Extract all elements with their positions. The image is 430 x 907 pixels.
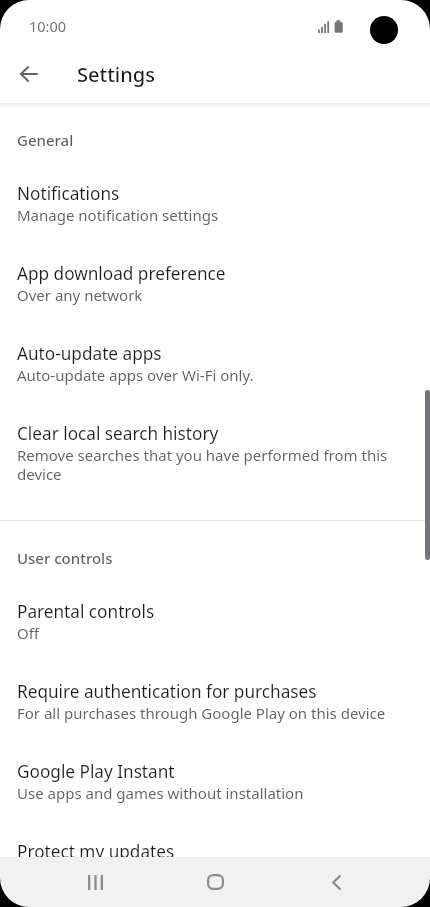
- button[interactable]: Google Play Instant: [0, 743, 430, 820]
- staticText: 10:00: [29, 16, 67, 36]
- button[interactable]: Home: [187, 860, 243, 904]
- staticText: Require authentication for purchases: [17, 680, 317, 703]
- staticText: Auto-update apps over Wi-Fi only.: [17, 365, 254, 385]
- staticText: Protect my updates: [17, 840, 175, 863]
- staticText: Manage notification settings: [17, 205, 219, 225]
- staticText: Use apps and games without installation: [17, 783, 304, 803]
- staticText: Auto-update over any network: [17, 863, 232, 883]
- staticText: Off: [17, 623, 40, 643]
- staticText: User controls: [17, 548, 113, 568]
- staticText: Over any network: [17, 285, 143, 305]
- staticText: Parental controls: [17, 600, 155, 623]
- staticText: For all purchases through Google Play on…: [17, 703, 386, 723]
- staticText: Remove searches that you have performed …: [17, 445, 397, 484]
- button[interactable]: Clear local search history: [0, 405, 430, 501]
- staticText: General: [17, 130, 74, 150]
- button[interactable]: Parental controls: [0, 583, 430, 660]
- staticText: Settings: [77, 61, 155, 88]
- staticText: Notifications: [17, 182, 120, 205]
- staticText: Clear local search history: [17, 422, 219, 445]
- button[interactable]: Recent apps: [67, 860, 123, 904]
- button[interactable]: App download preference: [0, 245, 430, 322]
- staticText: Auto-update apps: [17, 342, 162, 365]
- button[interactable]: Notifications: [0, 165, 430, 242]
- button[interactable]: Auto-update apps: [0, 325, 430, 402]
- staticText: Google Play Instant: [17, 760, 175, 783]
- button[interactable]: Require authentication for purchases: [0, 663, 430, 740]
- button[interactable]: Protect my updates: [0, 823, 430, 900]
- staticText: App download preference: [17, 262, 226, 285]
- button[interactable]: Navigate up: [8, 53, 49, 94]
- button[interactable]: Back: [308, 860, 364, 904]
